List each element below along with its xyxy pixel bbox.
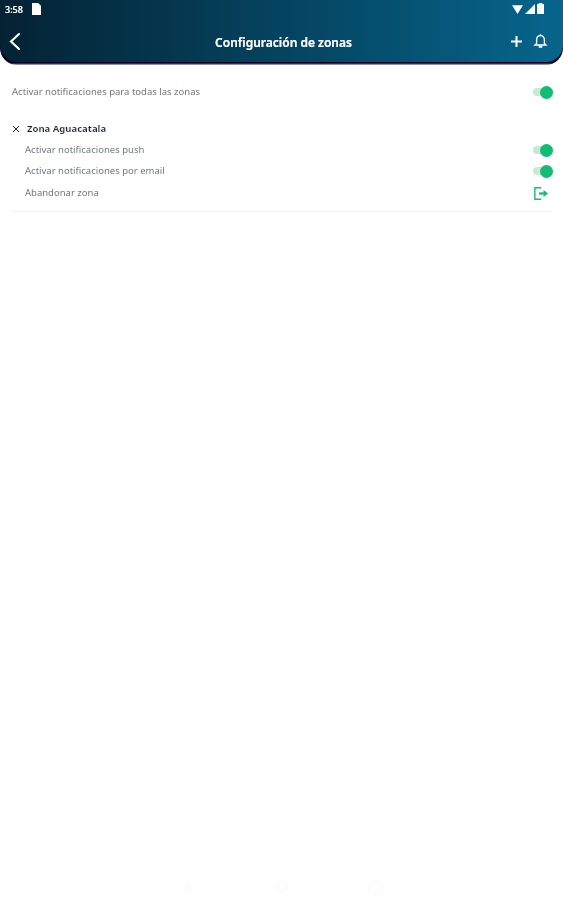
staticText: Zona Aguacatala [27, 122, 107, 135]
staticText: Activar notificaciones por email [25, 164, 165, 177]
staticText: Activar notificaciones push [25, 143, 145, 156]
button[interactable]: Activar notificaciones por email [0, 160, 563, 181]
staticText: Activar notificaciones para todas las zo… [12, 85, 201, 98]
button[interactable]: Activar notificaciones para todas las zo… [0, 81, 563, 102]
staticText: Abandonar zona [25, 186, 99, 199]
button[interactable]: Abandonar zona [530, 182, 552, 204]
button[interactable]: Add [504, 29, 528, 53]
button[interactable]: Activar notificaciones push [0, 139, 563, 160]
button[interactable]: Toggle [531, 83, 555, 101]
button[interactable]: Notifications [528, 29, 552, 53]
staticText: Configuración de zonas [215, 34, 352, 50]
button[interactable]: Back [0, 26, 30, 56]
staticText: 3:58 [5, 3, 23, 15]
button[interactable]: Zona Aguacatala [0, 118, 563, 139]
button[interactable]: Toggle [531, 141, 555, 159]
button[interactable]: Toggle [531, 162, 555, 180]
button[interactable]: Abandonar zona [0, 181, 563, 204]
